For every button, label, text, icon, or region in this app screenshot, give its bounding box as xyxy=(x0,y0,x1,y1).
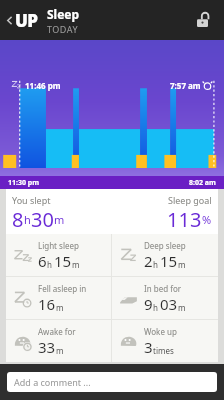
staticText: 11:46 pm xyxy=(25,80,61,91)
staticText: times xyxy=(153,345,174,356)
button[interactable]: Unlock xyxy=(188,6,216,34)
staticText: Sleep goal xyxy=(168,194,212,206)
staticText: Light sleep xyxy=(38,240,79,251)
staticText: 7:57 am xyxy=(170,80,201,91)
staticText: You slept xyxy=(12,194,51,206)
button[interactable]: Add a comment ... xyxy=(7,372,217,392)
button[interactable]: Fell asleep in xyxy=(6,277,111,319)
staticText: 113 xyxy=(167,206,202,229)
staticText: m xyxy=(72,259,80,270)
staticText: 30 xyxy=(31,206,54,229)
staticText: h xyxy=(153,302,158,313)
staticText: m xyxy=(56,345,64,356)
staticText: In bed for xyxy=(144,283,182,294)
staticText: 3 xyxy=(144,337,153,357)
staticText: m xyxy=(56,302,64,313)
staticText: TODAY xyxy=(47,23,79,35)
staticText: Deep sleep xyxy=(144,240,186,251)
staticText: h xyxy=(153,259,158,270)
staticText: 16 xyxy=(38,294,56,314)
staticText: 15 xyxy=(54,251,72,271)
button[interactable]: Awake for xyxy=(6,320,111,362)
staticText: h xyxy=(24,212,31,227)
staticText: Add a comment ... xyxy=(14,376,91,388)
staticText: Fell asleep in xyxy=(38,283,87,294)
staticText: 6 xyxy=(38,251,47,271)
staticText: 11:30 pm xyxy=(8,178,40,188)
staticText: Woke up xyxy=(144,326,177,337)
staticText: h xyxy=(47,259,52,270)
button[interactable]: In bed for xyxy=(112,277,218,319)
staticText: m xyxy=(54,212,65,227)
staticText: Sleep xyxy=(47,6,80,22)
button[interactable]: You slept xyxy=(12,194,212,229)
staticText: m xyxy=(178,259,186,270)
button[interactable]: Back to UP xyxy=(4,5,40,36)
staticText: 33 xyxy=(38,337,56,357)
staticText: 8 xyxy=(12,206,24,229)
staticText: 9 xyxy=(144,294,153,314)
button[interactable]: Woke up xyxy=(112,320,218,362)
staticText: 03 xyxy=(160,294,178,314)
staticText: % xyxy=(202,212,212,227)
button[interactable]: Light sleep xyxy=(6,234,111,276)
staticText: 15 xyxy=(160,251,178,271)
staticText: m xyxy=(178,302,186,313)
staticText: UP xyxy=(15,9,38,32)
staticText: 2 xyxy=(144,251,153,271)
staticText: Awake for xyxy=(38,326,76,337)
staticText: 8:02 am xyxy=(189,178,216,188)
button[interactable]: Deep sleep xyxy=(112,234,218,276)
